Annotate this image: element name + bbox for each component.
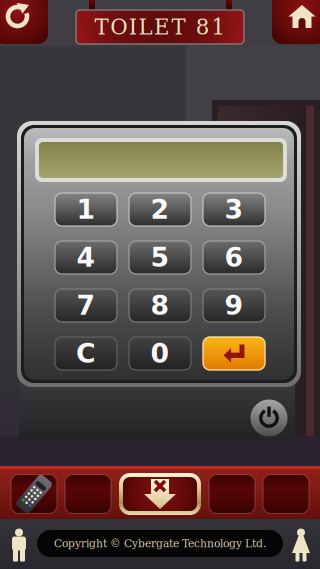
staticText: 4 — [76, 242, 95, 273]
button[interactable]: 4 — [55, 241, 117, 274]
button[interactable]: 8 — [129, 289, 191, 322]
button[interactable]: Home — [272, 0, 320, 44]
staticText: 8 — [150, 290, 169, 321]
staticText: 2 — [150, 194, 169, 225]
button[interactable]: 1 — [55, 193, 117, 226]
staticText: 9 — [224, 290, 243, 321]
button[interactable]: 7 — [55, 289, 117, 322]
button[interactable]: Inventory slot — [11, 474, 57, 513]
staticText: C — [76, 338, 96, 369]
staticText: 6 — [224, 242, 243, 273]
staticText: 1 — [76, 194, 95, 225]
staticText: 7 — [76, 290, 95, 321]
button[interactable]: 9 — [203, 289, 265, 322]
button[interactable]: 3 — [203, 193, 265, 226]
button[interactable]: C — [55, 337, 117, 370]
button[interactable]: Enter — [203, 337, 265, 370]
staticText: 3 — [224, 194, 243, 225]
button[interactable]: Drop item — [119, 473, 201, 515]
button[interactable]: Inventory slot — [209, 474, 255, 513]
button[interactable]: Inventory slot — [263, 474, 309, 513]
button[interactable]: Power — [249, 398, 289, 438]
button[interactable]: 5 — [129, 241, 191, 274]
staticText: 0 — [150, 338, 169, 369]
staticText: Copyright © Cybergate Technology Ltd. — [54, 537, 266, 550]
button[interactable]: 6 — [203, 241, 265, 274]
button[interactable]: 0 — [129, 337, 191, 370]
staticText: 5 — [150, 242, 169, 273]
button[interactable]: 2 — [129, 193, 191, 226]
button[interactable]: Restart — [0, 0, 48, 44]
staticText: TOILET 81 — [95, 15, 225, 39]
button[interactable]: Inventory slot — [65, 474, 111, 513]
